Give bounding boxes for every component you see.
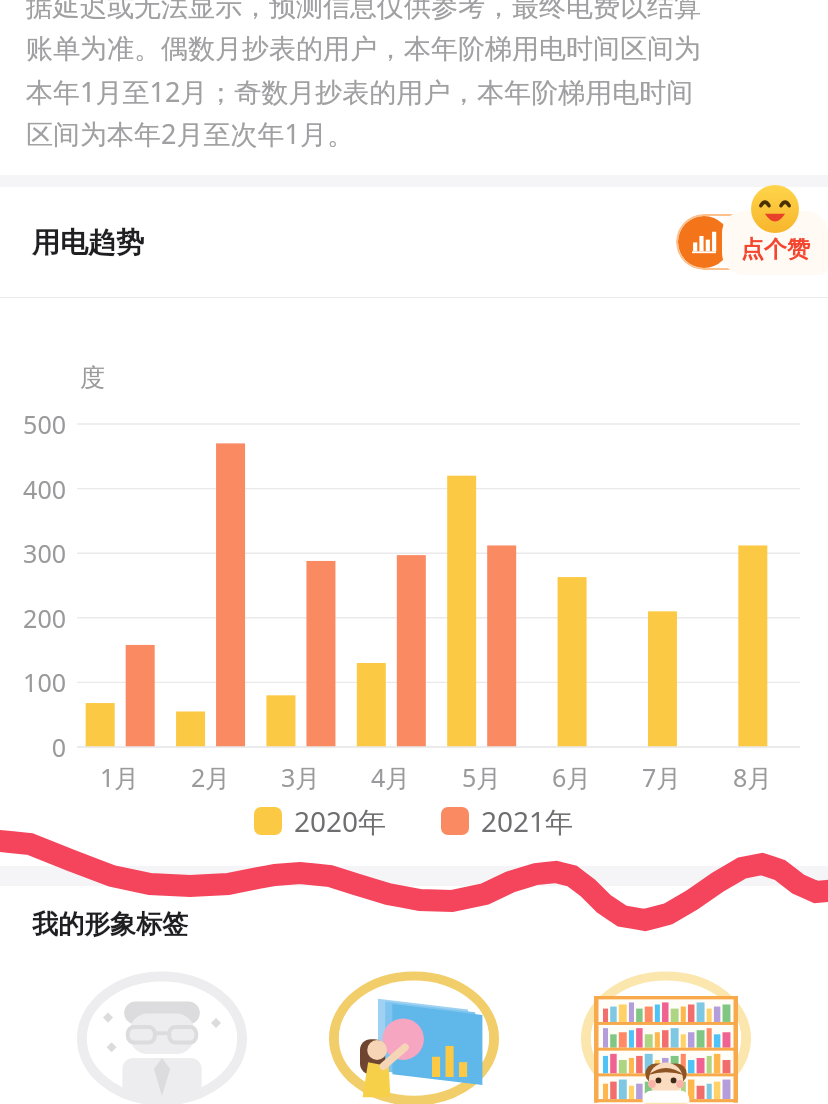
button[interactable]: 点个赞 Like: [722, 185, 828, 275]
staticText: 账单为准。偶数月抄表的用户，本年阶梯用电时间区间为: [26, 32, 701, 66]
staticText: 100: [23, 665, 66, 699]
staticText: 0: [51, 730, 66, 764]
staticText: 7月: [642, 760, 682, 794]
staticText: 3月: [281, 760, 321, 794]
staticText: 300: [23, 536, 66, 570]
staticText: 200: [23, 601, 66, 635]
staticText: 8月: [733, 760, 773, 794]
button[interactable]: Locked badge: [72, 969, 252, 1104]
button[interactable]: Line chart: [730, 214, 788, 270]
staticText: 区间为本年2月至次年1月。: [26, 115, 354, 152]
staticText: 据延迟或无法显示，预测信息仅供参考，最终电费以结算: [26, 0, 701, 24]
staticText: 度: [80, 362, 105, 393]
staticText: 用电趋势: [32, 225, 144, 260]
staticText: 4月: [371, 760, 411, 794]
button[interactable]: 2020年: [254, 802, 387, 840]
staticText: 500: [23, 407, 66, 441]
staticText: 5月: [462, 760, 502, 794]
staticText: 2021年: [481, 802, 574, 840]
button[interactable]: 2021年: [441, 802, 574, 840]
button[interactable]: Reader badge: [576, 969, 756, 1104]
staticText: 2020年: [294, 802, 387, 840]
staticText: 本年1月至12月；奇数月抄表的用户，本年阶梯用电时间: [26, 73, 694, 110]
staticText: 6月: [552, 760, 592, 794]
staticText: 1月: [100, 760, 140, 794]
staticText: 2月: [191, 760, 231, 794]
button[interactable]: Bar chart: [678, 216, 730, 268]
staticText: 我的形象标签: [32, 908, 188, 941]
button[interactable]: Data analyst badge: [324, 969, 504, 1104]
staticText: 400: [23, 472, 66, 506]
staticText: 点个赞: [741, 235, 810, 264]
